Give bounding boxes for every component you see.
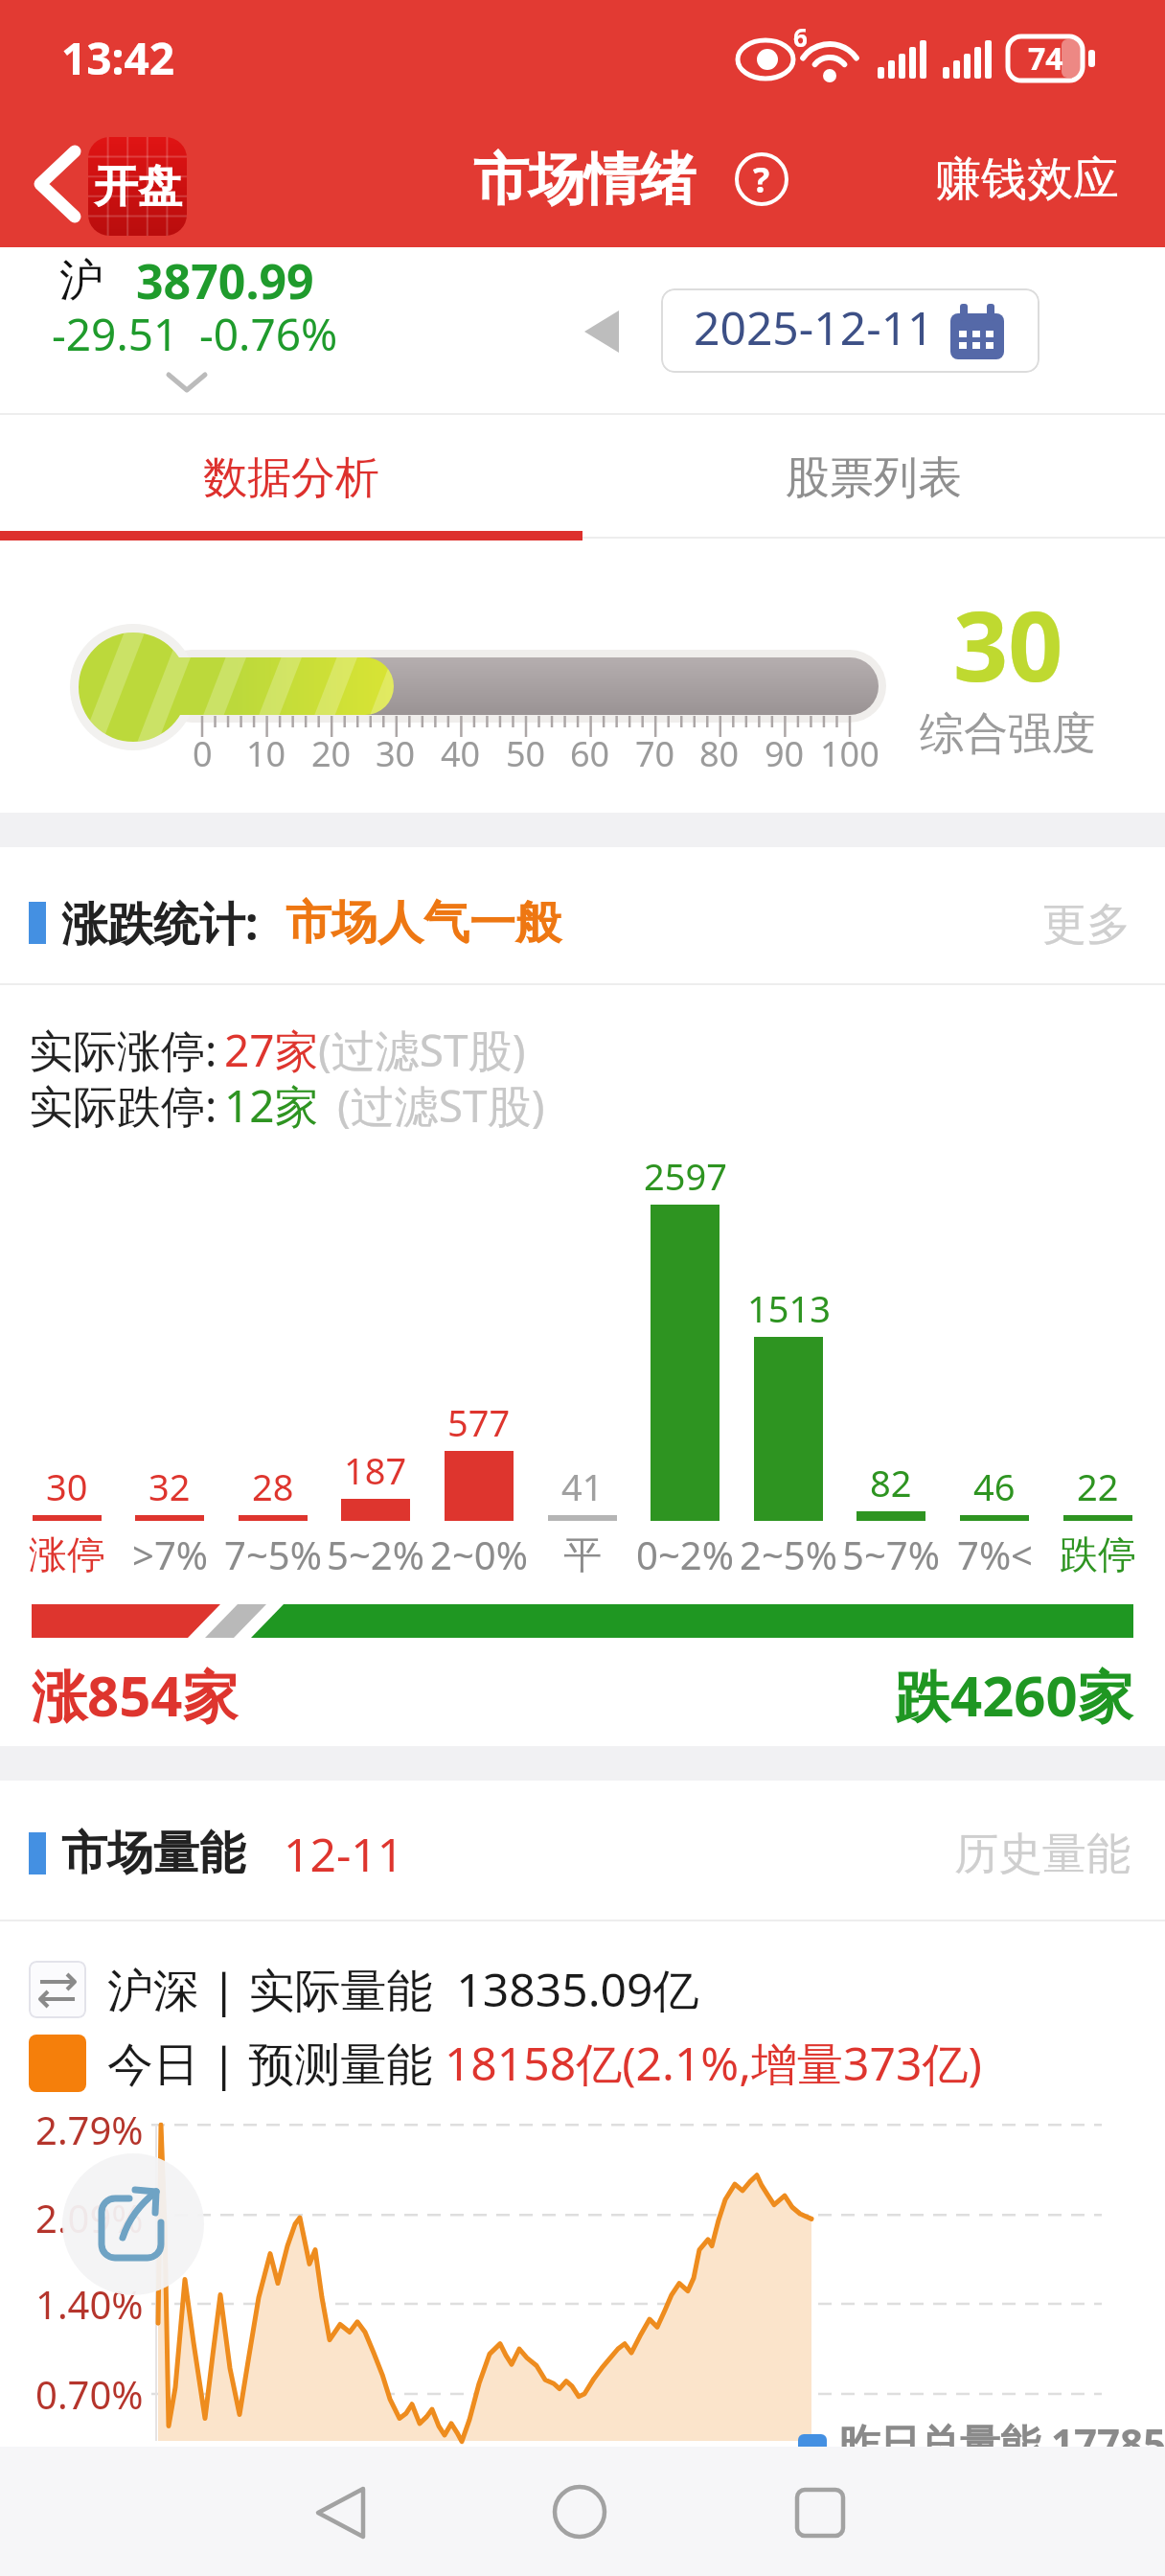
button[interactable]: 数据分析 [0,415,582,540]
staticText: 2.79% [35,2104,144,2155]
button[interactable]: 历史量能 [886,1821,1131,1888]
staticText: 100 [820,730,879,777]
staticText: 沪深 | 实际量能 13835.09亿 [107,1958,699,2021]
button[interactable] [581,307,623,356]
staticText: 60 [570,730,610,777]
staticText: 2.09% [35,2192,144,2243]
staticText: ? [753,156,770,203]
staticText: 2597 [644,1151,727,1199]
staticText: 市场量能 [61,1825,245,1882]
staticText: 32 [148,1461,191,1509]
staticText: 市场情绪 [473,145,696,215]
staticText: 更多 [1042,897,1131,953]
staticText: 28 [252,1461,294,1509]
button[interactable] [539,2472,621,2554]
staticText: 涨854家 [32,1657,239,1733]
staticText: 涨跌统计: [61,891,259,954]
staticText: 13:42 [61,28,175,88]
staticText: 3870.99 [136,248,314,313]
button[interactable]: 2025-12-11 [661,288,1039,373]
staticText: 7%< [957,1529,1033,1580]
staticText: 50 [506,730,546,777]
staticText: 赚钱效应 [935,150,1119,208]
staticText: 46 [973,1461,1016,1509]
staticText: 0~2% [636,1529,734,1580]
button[interactable]: 开盘 [88,137,187,236]
staticText: (过滤ST股) [318,1020,526,1080]
staticText: 187 [344,1445,407,1493]
staticText: 30 [953,579,1063,709]
staticText: 数据分析 [203,450,379,506]
staticText: 跌4260家 [895,1657,1133,1733]
staticText: 80 [699,730,740,777]
staticText: 10 [246,730,286,777]
staticText: 70 [635,730,675,777]
staticText: 30 [46,1461,88,1509]
staticText: 90 [765,730,805,777]
button[interactable]: 赚钱效应 [919,144,1135,215]
staticText: 开盘 [94,159,182,215]
staticText: 12家 [224,1075,319,1136]
staticText: 27家 [224,1020,319,1080]
staticText: 0 [193,730,213,777]
staticText: 20 [311,730,352,777]
staticText: 沪 [59,253,103,309]
staticText: 7~5% [224,1529,322,1580]
staticText: -29.51 [52,304,179,364]
staticText: (过滤ST股) [337,1075,545,1136]
staticText: 22 [1077,1461,1119,1509]
staticText: 1.40% [35,2278,144,2330]
staticText: 涨停 [29,1530,105,1578]
staticText: 6 [793,20,808,54]
staticText: -0.76% [199,304,338,364]
staticText: 74 [1028,37,1063,80]
staticText: 41 [561,1461,604,1509]
staticText: 5~7% [842,1529,940,1580]
staticText: 82 [870,1458,912,1506]
staticText: 0.70% [35,2368,144,2420]
staticText: 历史量能 [954,1827,1131,1882]
staticText: 1513 [747,1283,831,1331]
button[interactable] [19,134,96,230]
staticText: 12-11 [284,1823,404,1885]
staticText: 2025-12-11 [694,296,934,358]
staticText: 跌停 [1060,1530,1136,1578]
staticText: 40 [441,730,481,777]
staticText: 2~5% [740,1529,837,1580]
staticText: >7% [132,1529,208,1580]
staticText: 577 [447,1397,511,1445]
staticText: 30 [376,730,416,777]
staticText: 5~2% [327,1529,424,1580]
button[interactable] [780,2472,861,2554]
button[interactable]: 股票列表 [582,415,1165,540]
button[interactable] [297,2472,383,2554]
staticText: 今日 | 预测量能 18158亿(2.1%,增量373亿) [107,2032,982,2095]
button[interactable] [62,2153,204,2295]
staticText: 实际涨停: [29,1020,217,1080]
staticText: 市场人气一般 [286,894,561,952]
button[interactable]: 更多 [977,891,1131,958]
staticText: 实际跌停: [29,1075,217,1136]
staticText: 综合强度 [920,706,1096,762]
staticText: 平 [563,1530,602,1578]
staticText: 昨日总量能 17785亿 [839,2415,1165,2470]
staticText: 2~0% [430,1529,528,1580]
staticText: 股票列表 [786,450,962,506]
